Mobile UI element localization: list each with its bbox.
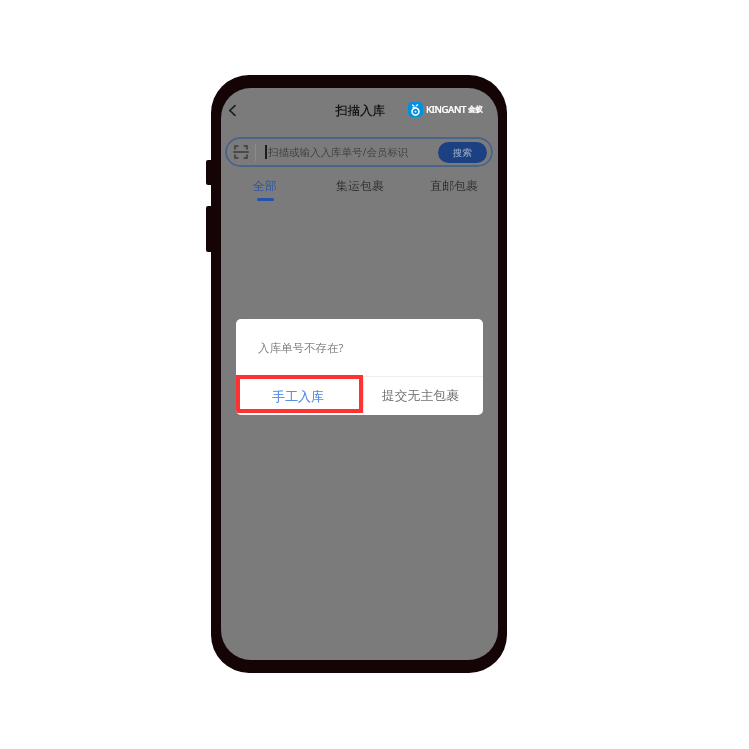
button[interactable]: 提交无主包裹 xyxy=(364,377,483,415)
staticText: 扫描或输入入库单号/会员标识 xyxy=(268,145,409,159)
staticText: 金蚁 xyxy=(468,105,483,114)
button[interactable]: 集运包裹 xyxy=(328,175,392,205)
button[interactable]: 扫描或输入入库单号/会员标识 xyxy=(225,137,493,167)
staticText: 提交无主包裹 xyxy=(382,388,459,404)
staticText: 直邮包裹 xyxy=(430,178,478,193)
button[interactable]: 直邮包裹 xyxy=(422,175,486,205)
staticText: 集运包裹 xyxy=(336,178,384,193)
staticText: 搜索 xyxy=(453,147,472,159)
button[interactable]: 全部 xyxy=(233,175,297,205)
staticText: KINGANT xyxy=(426,103,466,116)
button[interactable]: Back xyxy=(221,99,243,121)
button[interactable]: 手工入库 xyxy=(236,377,363,415)
button[interactable]: KINGANT xyxy=(408,102,483,117)
staticText: 手工入库 xyxy=(272,388,324,404)
staticText: 入库单号不存在? xyxy=(258,340,344,356)
button[interactable]: 搜索 xyxy=(438,142,487,163)
staticText: 扫描入库 xyxy=(335,103,385,119)
staticText: 全部 xyxy=(253,178,277,193)
